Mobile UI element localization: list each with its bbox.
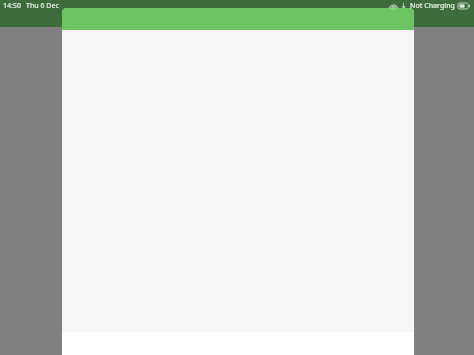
staticText: Not Charging bbox=[410, 1, 455, 11]
staticText: Thu 6 Dec bbox=[26, 1, 59, 11]
other: Battery bbox=[458, 3, 470, 9]
other: Wi-Fi bbox=[389, 3, 398, 10]
staticText: ↓ bbox=[401, 2, 407, 10]
staticText: 14:50 bbox=[3, 1, 21, 11]
